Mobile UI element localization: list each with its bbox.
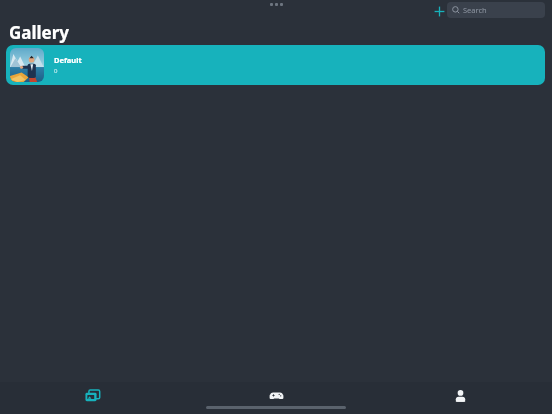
staticText: Default [54, 55, 82, 65]
button[interactable]: Add [430, 2, 448, 20]
button[interactable]: Profile [368, 382, 552, 414]
staticText: 0 [54, 67, 58, 75]
button[interactable]: Search [447, 2, 545, 18]
button[interactable]: Default [6, 45, 545, 85]
staticText: Search [463, 5, 487, 15]
button[interactable]: Gallery [0, 382, 184, 414]
button[interactable]: Games [184, 382, 368, 414]
staticText: Gallery [9, 21, 70, 44]
